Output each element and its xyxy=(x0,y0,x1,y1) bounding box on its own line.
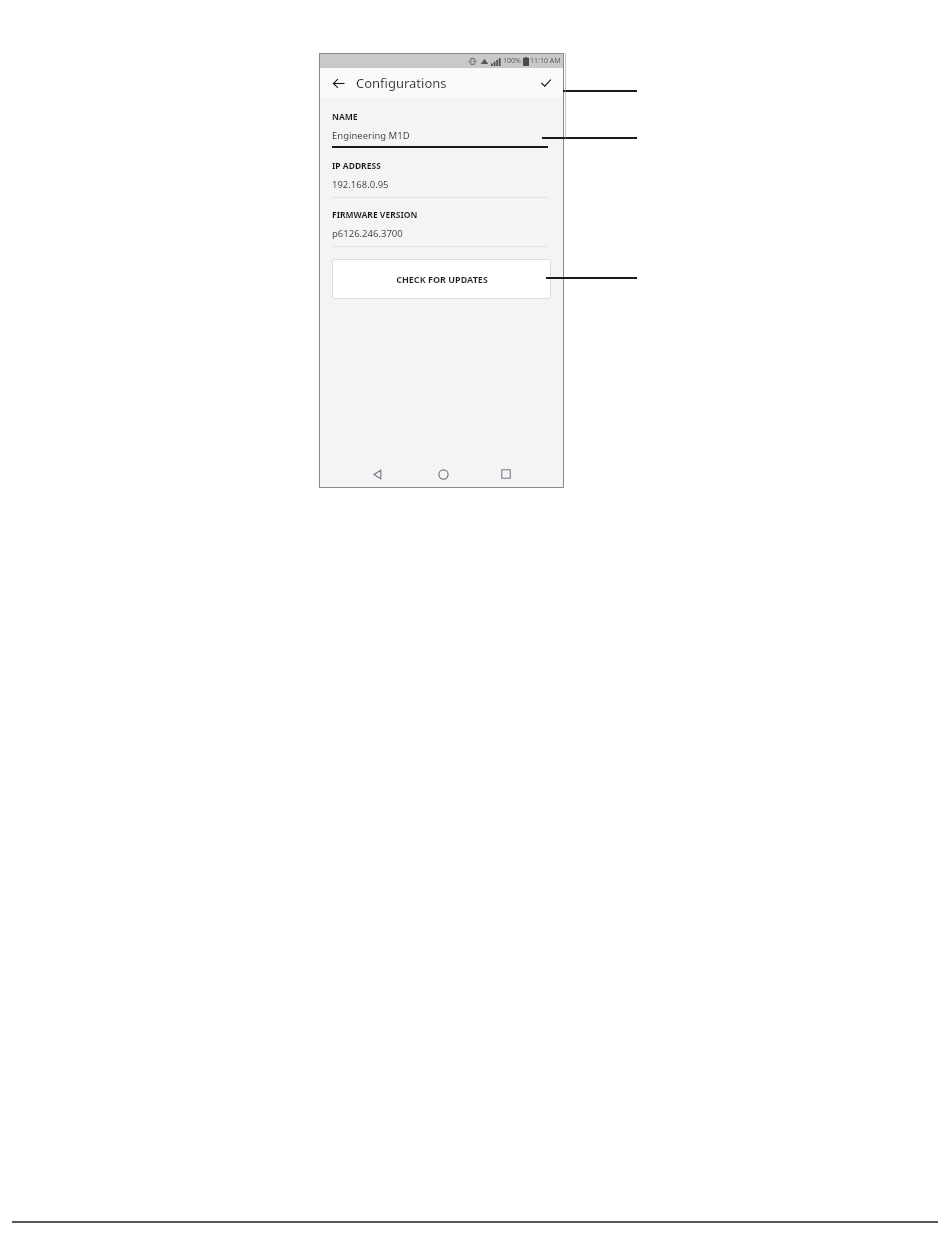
staticText: FIRMWARE VERSION xyxy=(332,209,418,221)
staticText: Configurations xyxy=(356,74,447,92)
button[interactable]: Save xyxy=(535,72,557,94)
staticText: 11:10 AM xyxy=(530,56,561,66)
button[interactable]: Recent apps xyxy=(494,462,518,486)
staticText: 100% xyxy=(503,56,521,66)
staticText: IP ADDRESS xyxy=(332,160,381,172)
staticText: NAME xyxy=(332,111,358,123)
staticText: CHECK FOR UPDATES xyxy=(396,273,488,285)
button[interactable]: Back xyxy=(365,462,389,486)
button[interactable]: Home xyxy=(431,462,455,486)
staticText: p6126.246.3700 xyxy=(332,227,403,240)
button[interactable]: Back xyxy=(327,72,349,94)
button[interactable]: CHECK FOR UPDATES xyxy=(332,259,551,299)
staticText: 192.168.0.95 xyxy=(332,178,389,191)
button[interactable]: Engineering M1D xyxy=(332,129,410,142)
